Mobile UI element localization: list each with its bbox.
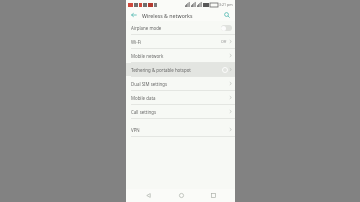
staticText: Wi-Fi xyxy=(131,39,221,45)
button[interactable]: Back xyxy=(129,10,139,20)
staticText: Wireless & networks xyxy=(142,12,222,19)
button[interactable]: Call settings xyxy=(126,105,235,118)
button[interactable]: Back xyxy=(138,189,158,202)
staticText: 3:21 pm xyxy=(219,2,233,7)
button[interactable]: Airplane mode xyxy=(126,21,235,34)
staticText: Dual SIM settings xyxy=(131,81,229,87)
staticText: Tethering & portable hotspot xyxy=(131,67,222,73)
button[interactable]: Mobile data xyxy=(126,91,235,104)
staticText: Off xyxy=(221,39,227,44)
staticText: Mobile network xyxy=(131,53,229,59)
button[interactable]: Home xyxy=(171,189,191,202)
button[interactable]: Dual SIM settings xyxy=(126,77,235,90)
button[interactable]: Tethering & portable hotspot xyxy=(126,63,235,76)
button[interactable]: Recent apps xyxy=(203,189,223,202)
button[interactable]: VPN xyxy=(126,123,235,136)
button[interactable]: Wi-Fi xyxy=(126,35,235,48)
button[interactable]: Search xyxy=(222,10,232,20)
staticText: Airplane mode xyxy=(131,25,221,31)
staticText: VPN xyxy=(131,127,229,133)
button[interactable]: Mobile network xyxy=(126,49,235,62)
button[interactable]: Toggle xyxy=(221,25,232,31)
staticText: Call settings xyxy=(131,109,229,115)
staticText: Mobile data xyxy=(131,95,229,101)
